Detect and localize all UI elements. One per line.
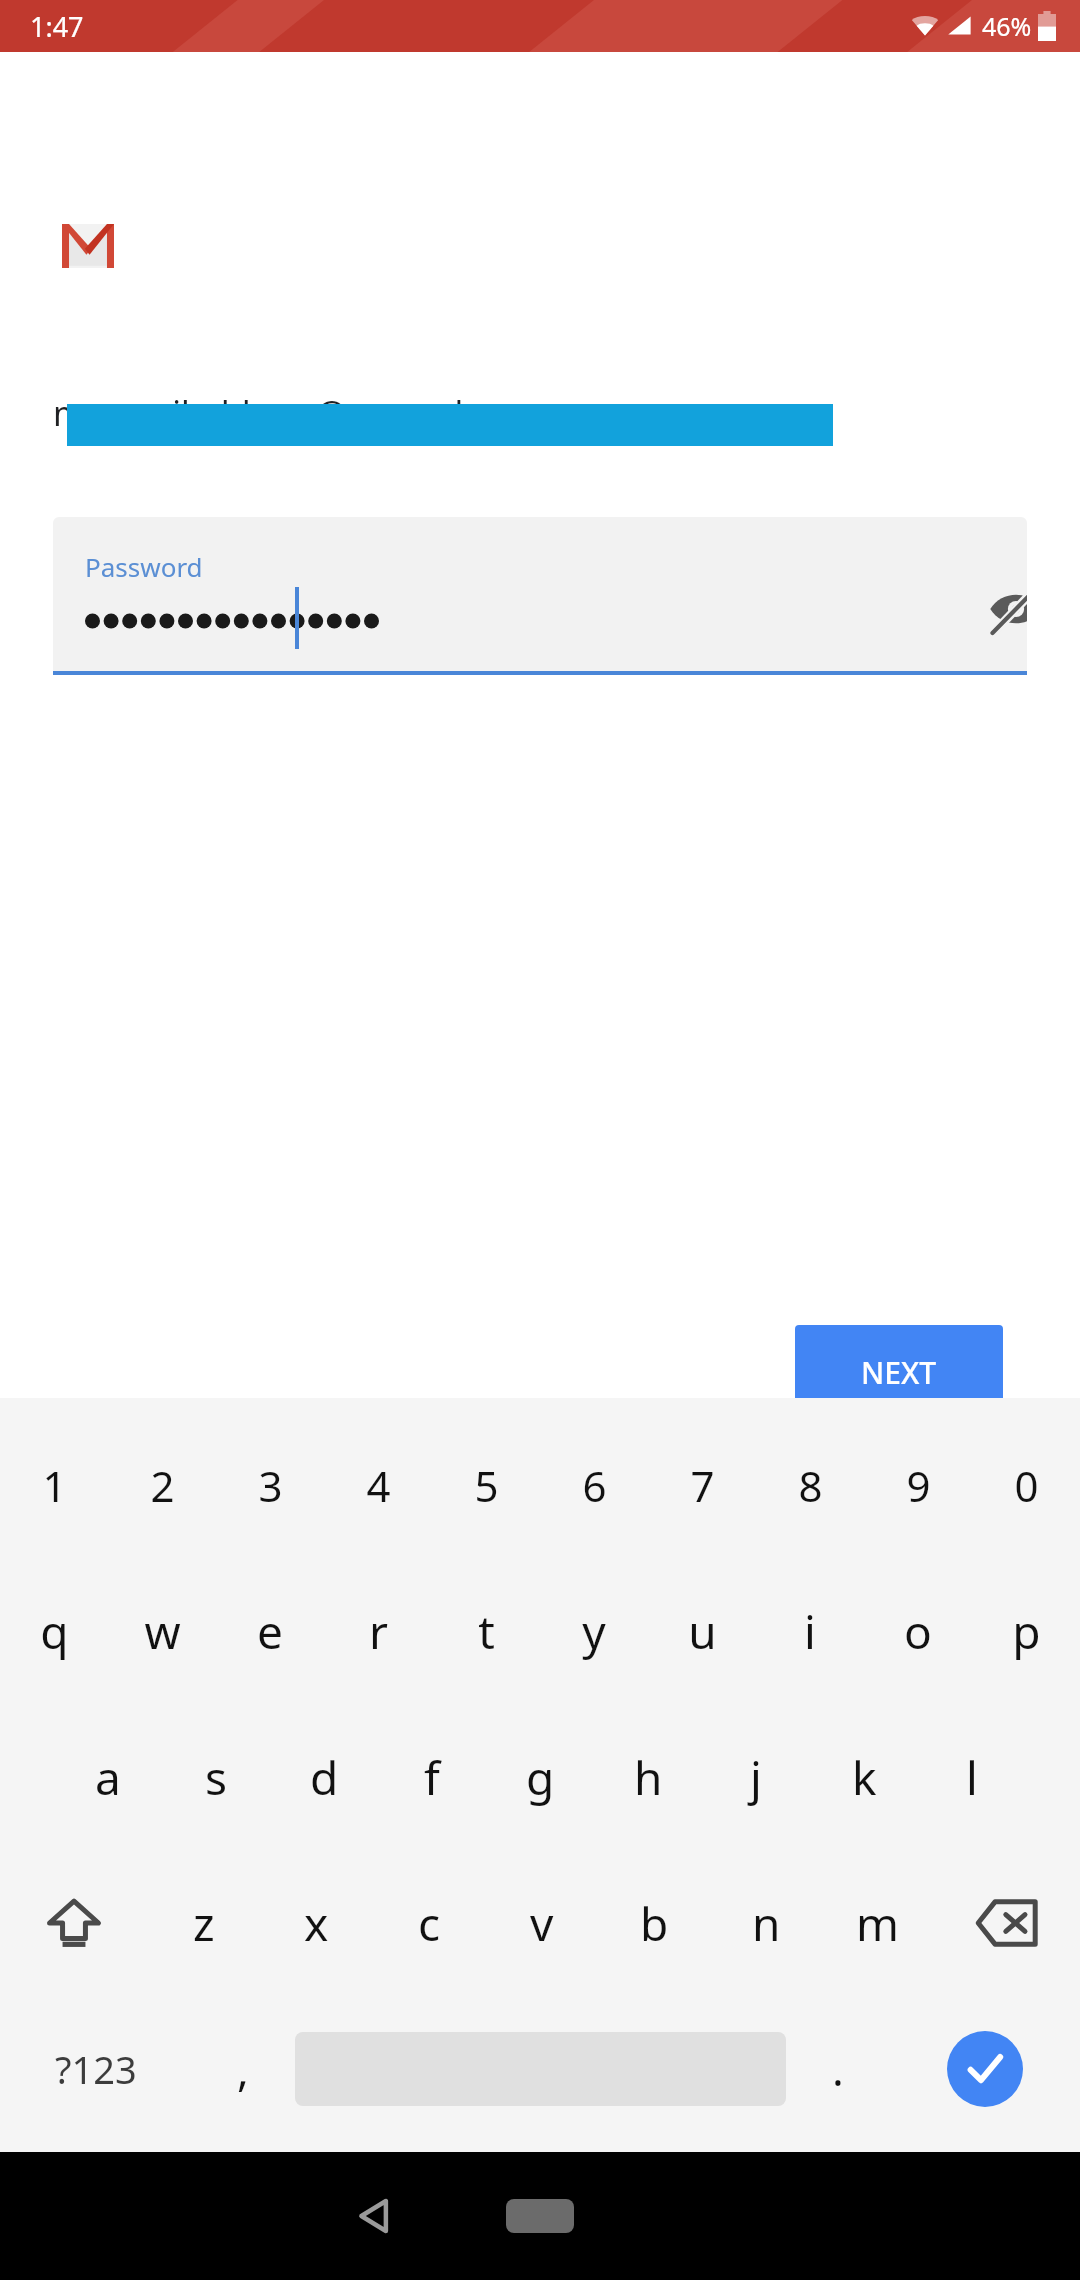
button[interactable]: 2 [108, 1412, 216, 1558]
button[interactable]: l [918, 1704, 1026, 1850]
button[interactable]: o [864, 1558, 972, 1704]
staticText: o [904, 1600, 932, 1663]
button[interactable]: b [598, 1850, 710, 1996]
staticText: f [424, 1746, 440, 1809]
staticText: p [1012, 1600, 1041, 1663]
staticText: s [205, 1746, 228, 1809]
button[interactable]: u [648, 1558, 756, 1704]
button[interactable]: 5 [432, 1412, 540, 1558]
button[interactable]: Back [330, 2171, 420, 2261]
staticText: b [640, 1892, 669, 1955]
button[interactable]: v [486, 1850, 598, 1996]
staticText: NEXT [861, 1352, 937, 1393]
button[interactable]: y [540, 1558, 648, 1704]
staticText: myemailaddress@example.com [53, 390, 561, 436]
staticText: 1:47 [30, 8, 84, 45]
staticText: u [688, 1600, 717, 1663]
button[interactable]: i [756, 1558, 864, 1704]
staticText: 9 [906, 1457, 931, 1514]
staticText: j [750, 1746, 762, 1809]
button[interactable]: Password [53, 517, 1027, 674]
button[interactable]: , [191, 1996, 295, 2142]
button[interactable]: a [54, 1704, 162, 1850]
button[interactable]: 0 [972, 1412, 1080, 1558]
staticText: a [95, 1746, 121, 1809]
button[interactable]: k [810, 1704, 918, 1850]
button[interactable]: m [822, 1850, 934, 1996]
staticText: n [752, 1892, 781, 1955]
button[interactable]: 8 [756, 1412, 864, 1558]
button[interactable]: t [432, 1558, 540, 1704]
staticText: ?123 [55, 2043, 137, 2095]
staticText: y [582, 1600, 606, 1663]
button[interactable]: Show password [961, 569, 1027, 649]
staticText: 7 [690, 1457, 715, 1514]
button[interactable]: w [108, 1558, 216, 1704]
staticText: r [369, 1600, 388, 1663]
staticText: v [530, 1892, 554, 1955]
staticText: k [852, 1746, 877, 1809]
staticText: 4 [366, 1457, 391, 1514]
staticText: 2 [150, 1457, 175, 1514]
button[interactable]: r [324, 1558, 432, 1704]
button[interactable]: Shift [0, 1850, 147, 1996]
staticText: h [634, 1746, 663, 1809]
button[interactable]: c [373, 1850, 486, 1996]
staticText: m [856, 1892, 900, 1955]
staticText: , [237, 2039, 249, 2099]
staticText: w [144, 1600, 181, 1663]
button[interactable]: p [972, 1558, 1080, 1704]
button[interactable]: ?123 [0, 1996, 191, 2142]
staticText: z [193, 1892, 215, 1955]
button[interactable]: e [216, 1558, 324, 1704]
staticText: 6 [582, 1457, 607, 1514]
button[interactable]: Home [485, 2181, 595, 2251]
staticText: d [310, 1746, 339, 1809]
button[interactable]: . [786, 1996, 890, 2142]
staticText: e [257, 1600, 283, 1663]
button[interactable]: 1 [0, 1412, 108, 1558]
staticText: l [966, 1746, 978, 1809]
button[interactable]: Backspace [934, 1850, 1080, 1996]
staticText: x [304, 1892, 329, 1955]
button[interactable]: f [378, 1704, 486, 1850]
button[interactable]: NEXT [795, 1325, 1003, 1420]
staticText: 3 [258, 1457, 283, 1514]
staticText: 1 [42, 1457, 67, 1514]
button[interactable]: s [162, 1704, 270, 1850]
button[interactable]: 6 [540, 1412, 648, 1558]
staticText: i [804, 1600, 816, 1663]
button[interactable]: 4 [324, 1412, 432, 1558]
staticText: 0 [1014, 1457, 1039, 1514]
staticText: 5 [474, 1457, 499, 1514]
staticText: t [478, 1600, 495, 1663]
staticText: 46% [982, 9, 1032, 43]
button[interactable]: n [710, 1850, 822, 1996]
button[interactable]: 3 [216, 1412, 324, 1558]
button[interactable]: Enter [890, 1996, 1080, 2142]
button[interactable]: 9 [864, 1412, 972, 1558]
button[interactable]: j [702, 1704, 810, 1850]
button[interactable]: q [0, 1558, 108, 1704]
button[interactable]: d [270, 1704, 378, 1850]
staticText: Password [85, 549, 203, 584]
staticText: . [832, 2039, 844, 2099]
staticText: g [526, 1746, 555, 1809]
staticText: q [40, 1600, 69, 1663]
button[interactable]: z [147, 1850, 260, 1996]
staticText: 8 [798, 1457, 823, 1514]
button[interactable]: x [260, 1850, 373, 1996]
staticText: c [418, 1892, 441, 1955]
button[interactable]: h [594, 1704, 702, 1850]
button[interactable]: g [486, 1704, 594, 1850]
button[interactable]: 7 [648, 1412, 756, 1558]
